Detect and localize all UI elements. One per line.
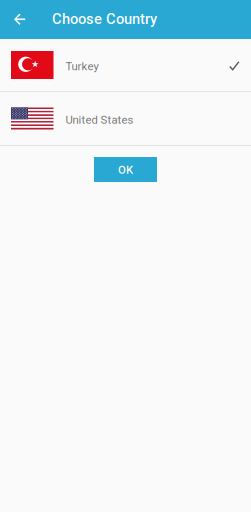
staticText: OK [118,163,133,177]
staticText: Turkey [65,60,98,73]
button[interactable]: Turkey [0,39,251,91]
button[interactable]: United States [0,92,251,145]
staticText: United States [65,113,133,127]
button[interactable]: Back [0,0,40,39]
button[interactable]: OK [94,157,157,182]
staticText: Choose Country [52,10,157,28]
